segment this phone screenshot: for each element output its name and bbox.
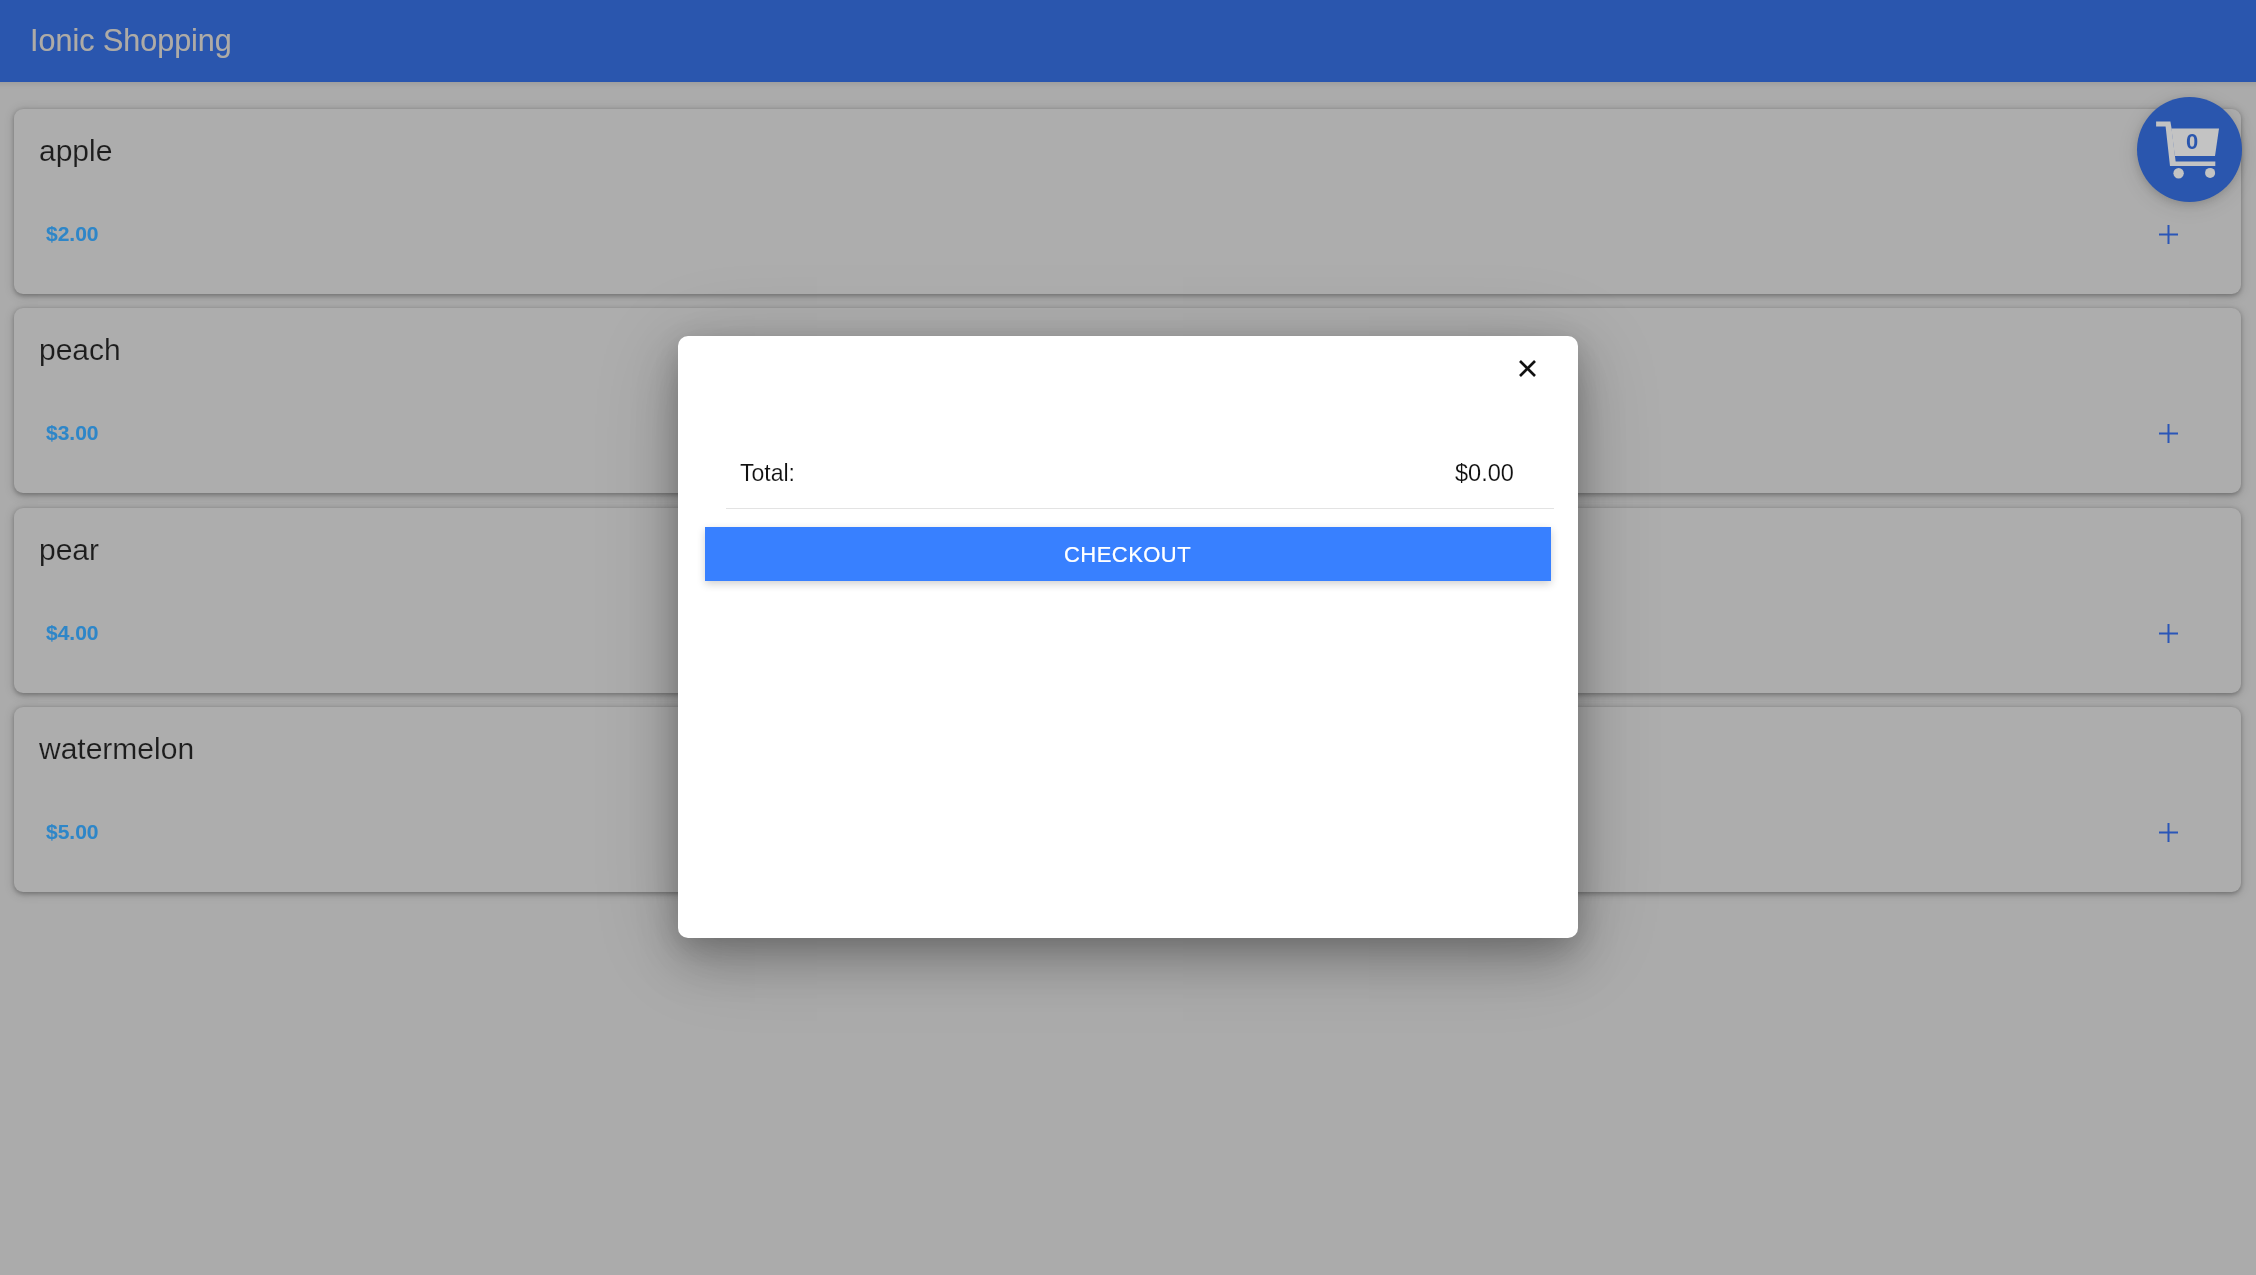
button[interactable]: Add one watermelon [2146, 810, 2190, 854]
button[interactable]: Add one apple [2146, 212, 2190, 256]
staticText: watermelon [39, 732, 195, 766]
button[interactable]: Shopping cart with 0 items [2137, 97, 2242, 202]
button[interactable]: CHECKOUT [705, 527, 1551, 581]
staticText: $4.00 [46, 621, 99, 644]
staticText: $5.00 [46, 820, 99, 843]
staticText: apple [39, 134, 113, 168]
staticText: CHECKOUT [1064, 542, 1192, 567]
staticText: $2.00 [46, 222, 99, 245]
button[interactable]: Close [1505, 346, 1549, 390]
button[interactable]: Add one pear [2146, 611, 2190, 655]
button[interactable]: watermelon [14, 707, 2241, 892]
staticText: peach [39, 333, 121, 367]
staticText: Total: [740, 460, 795, 486]
button[interactable]: pear [14, 508, 2241, 693]
staticText: $0.00 [1455, 460, 1514, 486]
staticText: $3.00 [46, 421, 99, 444]
staticText: Ionic Shopping [30, 23, 232, 57]
button[interactable]: apple [14, 109, 2241, 294]
staticText: pear [39, 533, 100, 567]
button[interactable]: Add one peach [2146, 411, 2190, 455]
staticText: 0 [2186, 129, 2199, 154]
button[interactable]: peach [14, 308, 2241, 493]
